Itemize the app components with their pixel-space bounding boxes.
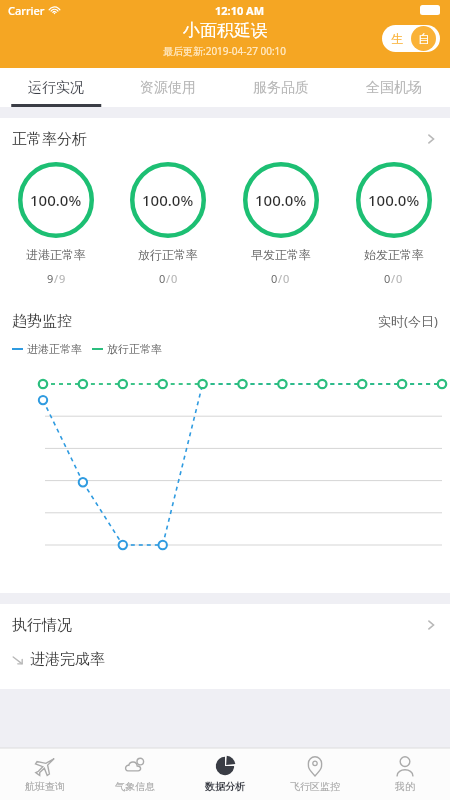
staticText: 气象信息 (115, 780, 155, 793)
button[interactable]: 100.0% (112, 162, 224, 286)
staticText: 始发正常率 (364, 247, 424, 262)
button[interactable]: 100.0% (337, 162, 450, 286)
staticText: 自 (418, 31, 430, 46)
staticText: 资源使用 (140, 79, 196, 97)
staticText: / (54, 271, 59, 286)
staticText: 放行正常率 (107, 342, 162, 356)
button[interactable]: 运行实况 (0, 68, 112, 107)
staticText: Carrier (8, 3, 45, 18)
staticText: 航班查询 (25, 780, 65, 793)
button[interactable]: 100.0% (0, 162, 112, 286)
staticText: / (278, 271, 283, 286)
staticText: 放行正常率 (138, 247, 198, 262)
staticText: 早发正常率 (251, 247, 311, 262)
button[interactable]: 航班查询 (0, 748, 90, 800)
button[interactable]: 趋势监控 (0, 300, 450, 342)
staticText: 小面积延误 (183, 20, 268, 41)
button[interactable]: 服务品质 (224, 68, 337, 107)
staticText: 实时(今日) (378, 312, 438, 330)
staticText: 100.0% (368, 190, 420, 210)
staticText: 进港完成率 (30, 650, 105, 669)
button[interactable]: 我的 (360, 748, 450, 800)
staticText: 进港正常率 (26, 247, 86, 262)
staticText: / (166, 271, 171, 286)
staticText: 100.0% (255, 190, 307, 210)
button[interactable]: 执行情况 (0, 604, 450, 646)
staticText: 全国机场 (366, 79, 422, 97)
button[interactable]: 数据分析 (180, 748, 270, 800)
button[interactable]: 全国机场 (337, 68, 450, 107)
staticText: 正常率分析 (12, 130, 87, 149)
staticText: 运行实况 (28, 79, 84, 97)
staticText: / (391, 271, 396, 286)
staticText: 我的 (395, 780, 415, 793)
staticText: 100.0% (30, 190, 82, 210)
staticText: 12:10 AM (215, 3, 265, 18)
staticText: 100.0% (142, 190, 194, 210)
staticText: 0 (283, 271, 290, 286)
staticText: 飞行区监控 (290, 780, 340, 793)
button[interactable]: 正常率分析 (0, 118, 450, 160)
staticText: 0 (171, 271, 178, 286)
button[interactable]: 气象信息 (90, 748, 180, 800)
button[interactable]: 放行正常率 (92, 342, 162, 356)
staticText: 服务品质 (253, 79, 309, 97)
button[interactable]: 进港正常率 (12, 342, 82, 356)
staticText: 0 (384, 271, 391, 286)
button[interactable]: 飞行区监控 (270, 748, 360, 800)
staticText: 0 (396, 271, 403, 286)
staticText: 生 (391, 31, 403, 46)
staticText: 9 (59, 271, 66, 286)
staticText: 0 (159, 271, 166, 286)
staticText: 最后更新:2019-04-27 00:10 (163, 44, 287, 58)
staticText: 9 (47, 271, 54, 286)
staticText: 数据分析 (205, 780, 245, 793)
staticText: 进港正常率 (27, 342, 82, 356)
button[interactable]: 资源使用 (112, 68, 224, 107)
button[interactable]: 100.0% (224, 162, 337, 286)
staticText: 执行情况 (12, 616, 72, 635)
staticText: 趋势监控 (12, 312, 72, 331)
staticText: 0 (271, 271, 278, 286)
button[interactable]: 切换生产/自定义 (382, 25, 440, 52)
